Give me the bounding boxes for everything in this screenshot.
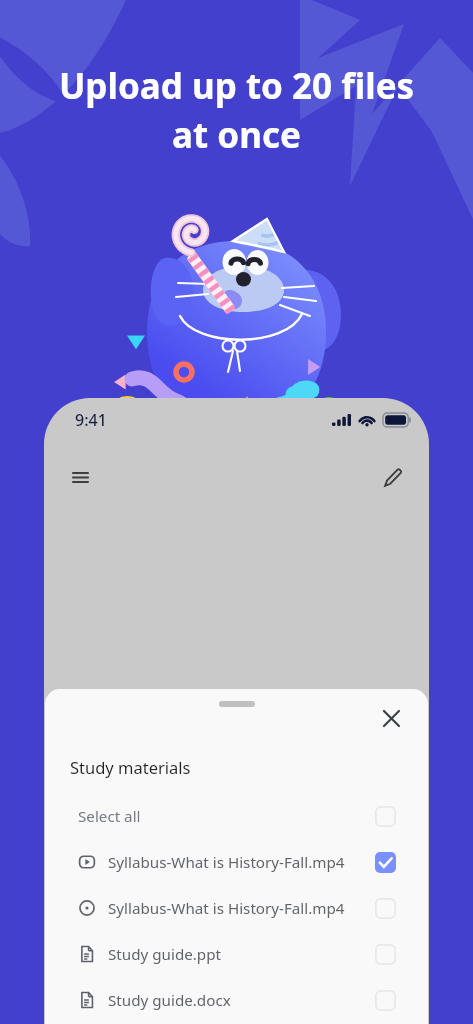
button[interactable]: Syllabus-What is History-Fall.mp4 [45, 839, 428, 885]
staticText: Syllabus-What is History-Fall.mp4 [108, 852, 345, 873]
staticText: 9:41 [75, 409, 107, 431]
button[interactable]: Syllabus-What is History-Fall.mp4 [45, 885, 428, 931]
button[interactable]: Study guide.ppt [45, 931, 428, 977]
staticText: Study guide.ppt [108, 944, 222, 965]
staticText: Select all [78, 806, 141, 827]
button[interactable]: Study guide.docx [45, 977, 428, 1023]
button[interactable]: Select all [45, 793, 428, 839]
button[interactable]: Menu [64, 461, 96, 493]
staticText: Study materials [70, 756, 191, 778]
staticText: Upload up to 20 files at once [0, 62, 473, 158]
button[interactable]: Edit [377, 461, 409, 493]
staticText: Syllabus-What is History-Fall.mp4 [108, 898, 345, 919]
staticText: Study guide.docx [108, 990, 231, 1011]
button[interactable]: Close [377, 704, 405, 732]
